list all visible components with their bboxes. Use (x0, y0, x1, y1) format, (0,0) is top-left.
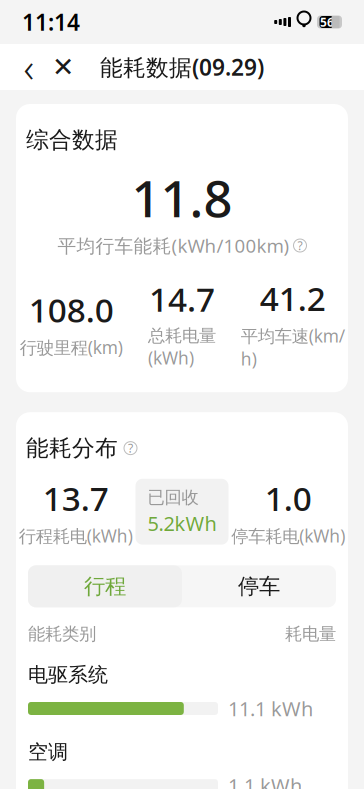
staticText: 41.2 (260, 276, 326, 320)
staticText: 11:14 (22, 7, 80, 37)
staticText: 停车 (238, 573, 280, 599)
staticText: 平均行车能耗(kWh/100km) (57, 233, 289, 258)
staticText: 总耗电量(kWh) (148, 325, 216, 369)
staticText: 停车耗电(kWh) (231, 524, 345, 547)
staticText: 13.7 (43, 476, 109, 520)
staticText: 14.7 (149, 277, 215, 321)
staticText: 行程耗电(kWh) (19, 524, 133, 547)
staticText: ? (128, 440, 133, 456)
staticText: 平均车速(km/h) (241, 324, 345, 370)
button[interactable]: Close (46, 47, 80, 87)
staticText: 空调 (28, 740, 68, 764)
staticText: 能耗类别 (28, 623, 96, 645)
button[interactable]: Back (12, 47, 46, 87)
button[interactable]: 行程 (28, 565, 182, 607)
staticText: ? (297, 238, 302, 253)
button[interactable]: 停车 (182, 565, 336, 607)
staticText: 能耗分布 (26, 434, 118, 462)
staticText: 108.0 (29, 287, 114, 332)
staticText: 11.8 (131, 164, 232, 231)
staticText: ‹ (23, 40, 34, 93)
staticText: 行程 (84, 573, 126, 599)
staticText: 已回收 (147, 487, 198, 508)
staticText: 11.1 kWh (228, 695, 313, 722)
staticText: 耗电量 (285, 623, 336, 645)
staticText: 1.0 (265, 476, 312, 520)
staticText: 能耗数据(09.29) (100, 52, 264, 82)
staticText: 电驱系统 (28, 663, 108, 687)
staticText: 行驶里程(km) (20, 336, 123, 359)
staticText: 56 (320, 14, 334, 30)
staticText: ✕ (52, 52, 74, 82)
staticText: 综合数据 (26, 126, 118, 154)
staticText: 1.1 kWh (228, 772, 302, 789)
staticText: 5.2kWh (147, 510, 216, 537)
